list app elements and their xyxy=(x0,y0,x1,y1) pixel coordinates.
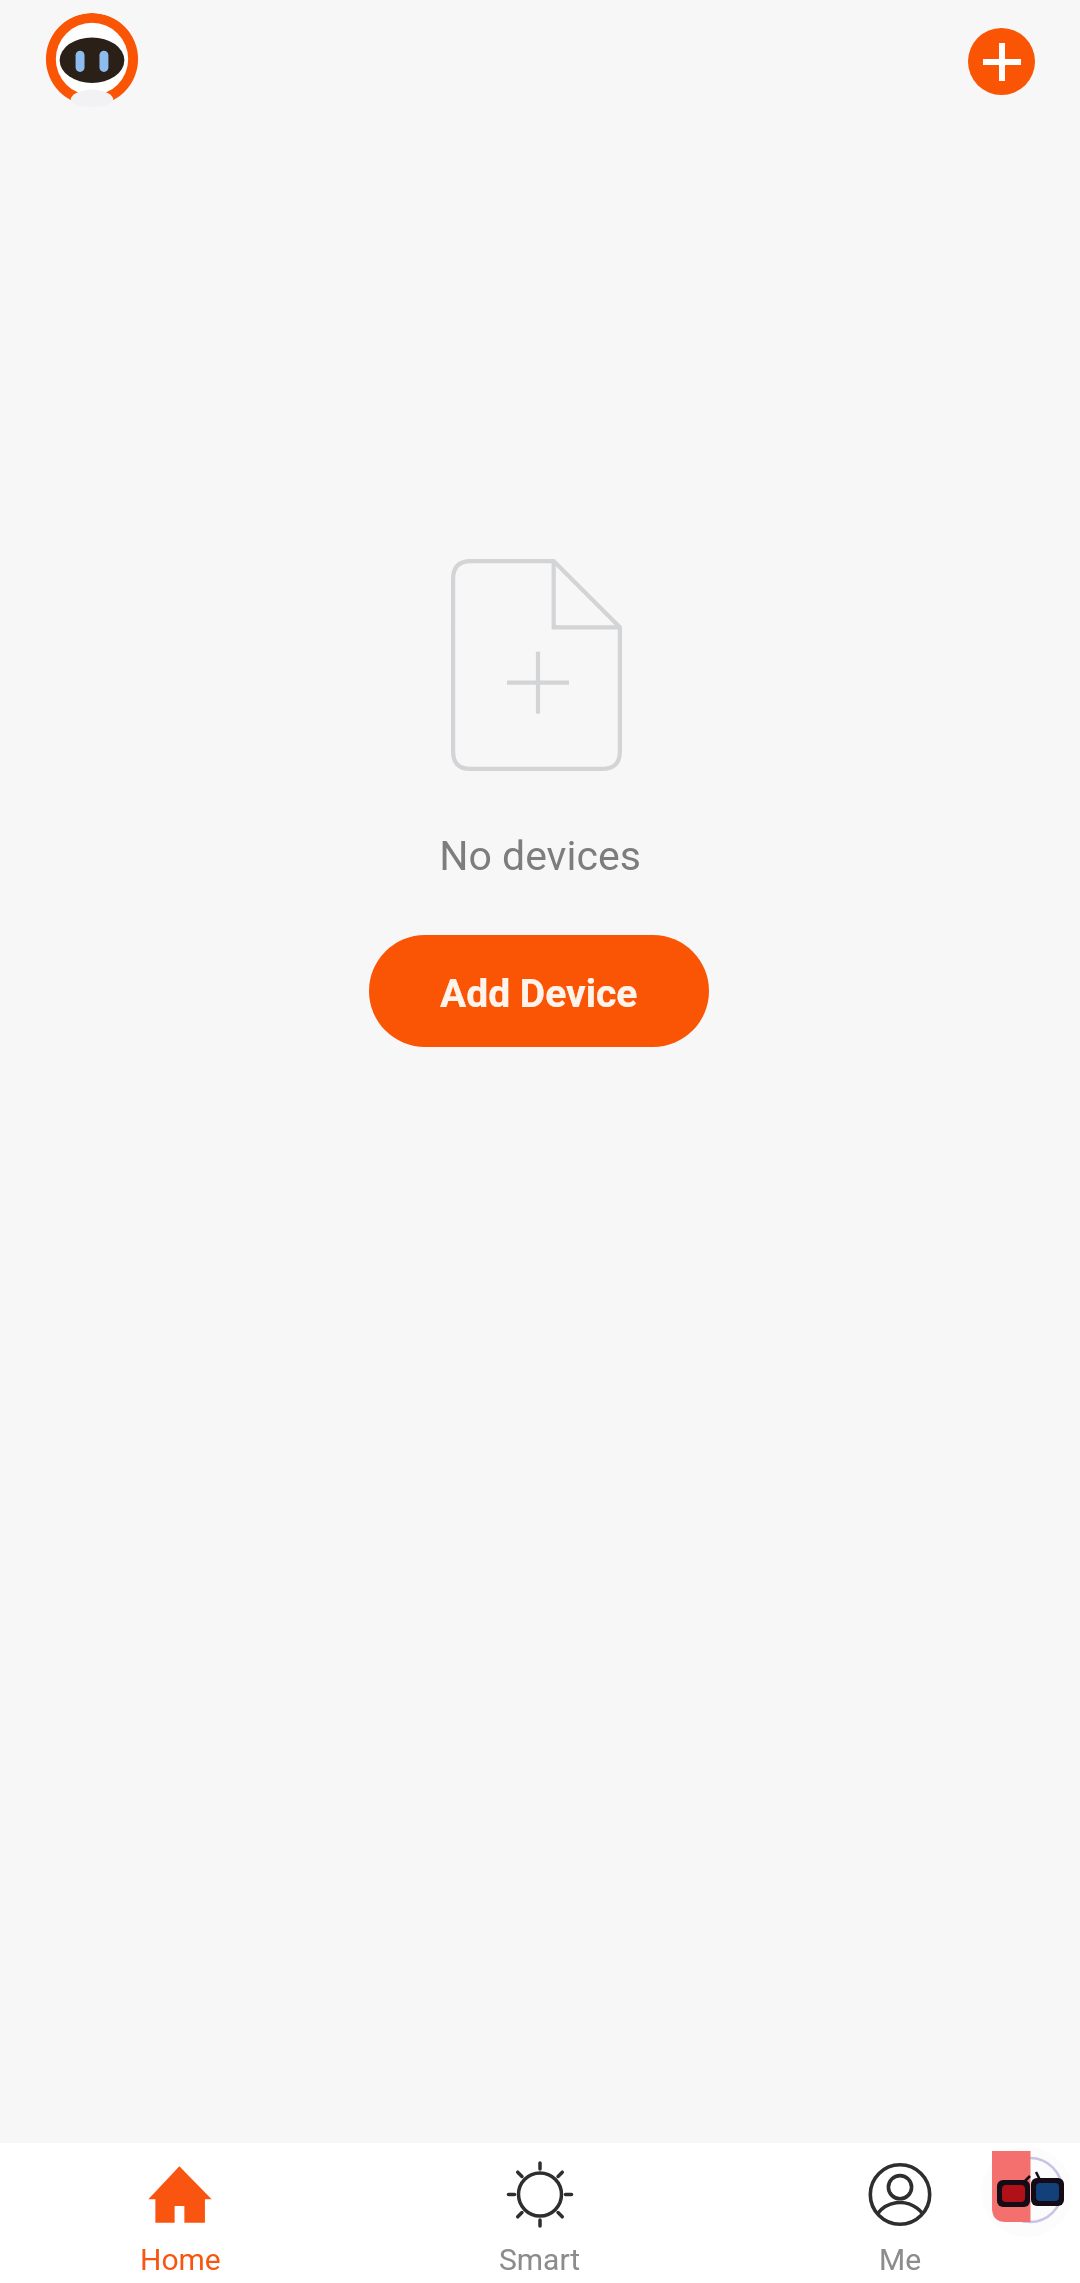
button[interactable]: Add Device xyxy=(369,935,709,1047)
button[interactable]: Add device xyxy=(968,28,1035,95)
staticText: Me xyxy=(879,2242,922,2277)
staticText: Smart xyxy=(499,2242,581,2277)
staticText: No devices xyxy=(439,832,641,880)
button[interactable]: AR glasses xyxy=(983,2140,1080,2240)
button[interactable]: Home xyxy=(0,2143,360,2283)
button[interactable]: Voice assistant xyxy=(45,13,139,107)
staticText: Add Device xyxy=(440,971,638,1017)
button[interactable]: Smart xyxy=(360,2143,720,2283)
staticText: Home xyxy=(140,2242,221,2277)
button[interactable]: Me xyxy=(720,2143,1080,2283)
